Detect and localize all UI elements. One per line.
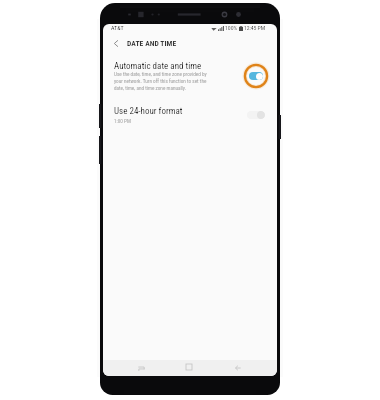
staticText: DATE AND TIME	[127, 39, 177, 48]
staticText: 1:00 PM	[114, 118, 131, 124]
button[interactable]: Home	[179, 360, 199, 376]
button[interactable]: Use 24-hour format, off	[243, 102, 269, 128]
button[interactable]: Use 24-hour format	[103, 102, 277, 128]
staticText: 100%	[225, 25, 238, 32]
staticText: Use the date, time, and time zone provid…	[114, 71, 207, 91]
staticText: Automatic date and time	[114, 61, 202, 72]
button[interactable]: Automatic date and time, on	[243, 63, 269, 89]
staticText: 12:45 PM	[244, 25, 265, 32]
staticText: AT&T	[111, 24, 124, 31]
button[interactable]: Back	[228, 360, 248, 376]
button[interactable]: Navigate up	[109, 36, 123, 50]
button[interactable]: Automatic date and time	[103, 58, 277, 100]
staticText: Use 24-hour format	[114, 106, 183, 117]
button[interactable]: Recent apps	[131, 360, 151, 376]
